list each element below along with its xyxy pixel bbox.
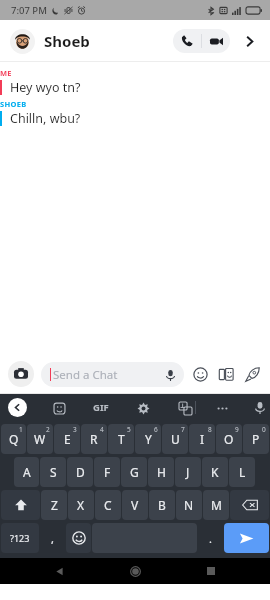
button[interactable]: Emoji bbox=[190, 364, 210, 384]
staticText: Send a Chat bbox=[53, 367, 118, 383]
button[interactable]: Video call bbox=[202, 29, 230, 53]
button[interactable]: R bbox=[81, 424, 107, 454]
staticText: 0 bbox=[262, 425, 266, 434]
button[interactable]: Q bbox=[1, 424, 26, 454]
button[interactable]: Send a Chat bbox=[41, 362, 184, 387]
button[interactable]: Voice input bbox=[250, 398, 270, 418]
button[interactable]: U bbox=[162, 424, 188, 454]
staticText: H bbox=[157, 464, 166, 480]
staticText: O bbox=[224, 431, 234, 447]
button[interactable]: Y bbox=[135, 424, 161, 454]
button[interactable]: Voice note bbox=[159, 364, 181, 386]
button[interactable]: Backspace bbox=[230, 490, 269, 520]
staticText: W bbox=[34, 431, 46, 447]
button[interactable]: H bbox=[148, 457, 174, 487]
button[interactable]: Stickers bbox=[216, 364, 236, 384]
button[interactable]: B bbox=[149, 490, 175, 520]
staticText: ME bbox=[0, 68, 12, 78]
button[interactable]: Translate bbox=[175, 398, 195, 418]
staticText: 1 bbox=[19, 425, 23, 434]
button[interactable]: L bbox=[229, 457, 255, 487]
button[interactable]: I bbox=[189, 424, 215, 454]
button[interactable]: O bbox=[216, 424, 242, 454]
button[interactable]: W bbox=[27, 424, 53, 454]
button[interactable]: M bbox=[203, 490, 229, 520]
button[interactable]: Profile avatar bbox=[10, 29, 35, 54]
staticText: E bbox=[64, 431, 71, 447]
button[interactable]: Recents bbox=[194, 558, 228, 584]
staticText: V bbox=[131, 497, 139, 513]
button[interactable]: N bbox=[176, 490, 202, 520]
staticText: . bbox=[209, 531, 212, 546]
staticText: L bbox=[239, 464, 246, 480]
button[interactable]: X bbox=[68, 490, 94, 520]
button[interactable]: Settings bbox=[133, 398, 153, 418]
button[interactable]: Shift bbox=[1, 490, 40, 520]
staticText: R bbox=[90, 431, 98, 447]
staticText: D bbox=[76, 464, 85, 480]
button[interactable]: K bbox=[202, 457, 228, 487]
button[interactable]: C bbox=[95, 490, 121, 520]
button[interactable]: ?123 bbox=[1, 523, 39, 553]
button[interactable]: G bbox=[121, 457, 147, 487]
button[interactable]: GIF bbox=[91, 401, 111, 414]
button[interactable]: D bbox=[67, 457, 93, 487]
staticText: J bbox=[186, 464, 190, 480]
staticText: SHOEB bbox=[0, 99, 27, 109]
staticText: Y bbox=[145, 431, 152, 447]
button[interactable]: Voice call bbox=[173, 29, 201, 53]
staticText: 7:07 PM bbox=[11, 4, 47, 17]
button[interactable]: Open profile bbox=[238, 30, 260, 52]
button[interactable]: E bbox=[54, 424, 80, 454]
staticText: Chilln, wbu? bbox=[10, 110, 81, 127]
staticText: M bbox=[211, 497, 222, 513]
button[interactable]: Send bbox=[224, 523, 269, 553]
button[interactable]: Emoji bbox=[66, 523, 91, 553]
staticText: B bbox=[158, 497, 166, 513]
staticText: 3 bbox=[73, 425, 77, 434]
staticText: S bbox=[50, 464, 57, 480]
staticText: Q bbox=[9, 431, 19, 447]
staticText: 2 bbox=[46, 425, 50, 434]
staticText: F bbox=[104, 464, 111, 480]
staticText: U bbox=[171, 431, 180, 447]
staticText: GIF bbox=[93, 401, 109, 414]
button[interactable]: . bbox=[198, 523, 223, 553]
button[interactable]: More options bbox=[212, 398, 232, 418]
button[interactable]: T bbox=[108, 424, 134, 454]
button[interactable]: P bbox=[243, 424, 269, 454]
staticText: X bbox=[77, 497, 85, 513]
staticText: Z bbox=[51, 497, 58, 513]
staticText: I bbox=[200, 431, 205, 447]
staticText: 5 bbox=[127, 425, 131, 434]
staticText: 8 bbox=[208, 425, 212, 434]
staticText: ?123 bbox=[10, 532, 30, 544]
button[interactable]: F bbox=[94, 457, 120, 487]
button[interactable]: , bbox=[40, 523, 65, 553]
button[interactable]: Stickers bbox=[49, 398, 69, 418]
staticText: 4 bbox=[100, 425, 104, 434]
staticText: K bbox=[211, 464, 219, 480]
button[interactable]: Home bbox=[118, 558, 152, 584]
staticText: N bbox=[184, 497, 194, 513]
button[interactable]: Open camera bbox=[8, 361, 34, 387]
button[interactable]: Z bbox=[41, 490, 67, 520]
staticText: , bbox=[51, 531, 54, 546]
staticText: Hey wyo tn? bbox=[10, 79, 81, 96]
button[interactable]: Send snap bbox=[242, 364, 262, 384]
staticText: P bbox=[252, 431, 260, 447]
staticText: 7 bbox=[181, 425, 185, 434]
staticText: G bbox=[130, 464, 139, 480]
staticText: Shoeb bbox=[44, 31, 90, 51]
staticText: T bbox=[118, 431, 125, 447]
button[interactable]: Back bbox=[8, 398, 27, 417]
button[interactable]: Back bbox=[42, 558, 76, 584]
button[interactable]: S bbox=[40, 457, 66, 487]
staticText: C bbox=[104, 497, 112, 513]
button[interactable]: A bbox=[14, 457, 39, 487]
button[interactable]: V bbox=[122, 490, 148, 520]
staticText: 9 bbox=[235, 425, 239, 434]
staticText: A bbox=[23, 464, 31, 480]
button[interactable]: J bbox=[175, 457, 201, 487]
